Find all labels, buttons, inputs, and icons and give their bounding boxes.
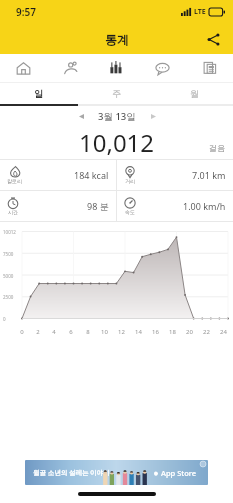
staticText: 월 [190,88,199,99]
staticText: 7500 [3,251,14,257]
staticText: LTE [194,7,206,17]
button[interactable]: Next day [145,108,161,124]
staticText: 0 [20,328,24,336]
staticText: 주 [112,88,121,99]
staticText: 1.00 km/h [183,200,226,212]
staticText: 2 [36,328,40,336]
staticText: 20 [186,328,193,336]
staticText: 10 [101,328,108,336]
staticText: 8 [86,328,90,336]
staticText: 10,012 [79,126,155,156]
staticText: 98 분 [87,200,109,212]
button[interactable]: Ad info [200,461,206,467]
staticText: 184 kcal [74,169,109,181]
staticText: 0 [3,316,6,322]
button[interactable]: Share [200,26,226,52]
staticText: 10012 [3,229,16,235]
button[interactable]: Previous day [73,108,89,124]
staticText: 윌골 소년의 설레는 이야기 [33,468,110,477]
button[interactable]: Friends [46,54,92,82]
staticText: 거리 [125,178,135,184]
button[interactable]: 속도 [117,191,233,221]
button[interactable]: Home [0,54,46,82]
staticText: 16 [152,328,159,336]
staticText: 12 [118,328,125,336]
staticText: 통계 [105,32,129,47]
staticText: 18 [169,328,176,336]
staticText: App Store [161,468,197,478]
button[interactable]: 거리 [117,160,233,190]
staticText: 14 [135,328,142,336]
staticText: 6 [69,328,73,336]
staticText: 7.01 km [192,169,226,181]
button[interactable]: News [186,54,233,82]
button[interactable]: 주 [77,83,155,104]
staticText: 칼로리 [7,178,22,184]
staticText: 일 [34,88,43,99]
button[interactable]: 칼로리 [0,160,116,190]
button[interactable]: Advertisement [25,460,208,485]
staticText: 22 [203,328,210,336]
staticText: 3월 13일 [98,110,136,123]
staticText: 시간 [8,209,18,215]
staticText: 5000 [3,273,14,279]
staticText: 속도 [125,209,135,215]
button[interactable]: Statistics [92,54,139,82]
button[interactable]: 일 [0,83,77,104]
button[interactable]: 월 [155,83,233,104]
button[interactable]: Chat [139,54,186,82]
staticText: 4 [52,328,56,336]
staticText: 2500 [3,294,14,300]
staticText: 걸음 [209,143,225,153]
staticText: 24 [220,328,227,336]
button[interactable]: 시간 [0,191,116,221]
staticText: 9:57 [16,5,36,19]
